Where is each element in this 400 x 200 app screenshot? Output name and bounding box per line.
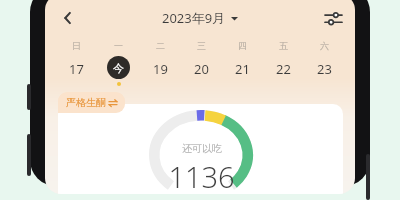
staticText: 2023年9月: [162, 9, 226, 27]
staticText: 还可以吃: [182, 142, 222, 155]
staticText: 六: [320, 40, 329, 51]
staticText: 二: [156, 40, 165, 51]
staticText: 今: [113, 61, 124, 75]
staticText: 21: [235, 60, 250, 78]
button[interactable]: 21: [222, 56, 263, 86]
staticText: 23: [317, 60, 332, 78]
button[interactable]: 19: [139, 56, 181, 86]
button[interactable]: 17: [55, 56, 97, 86]
button[interactable]: 2023年9月: [154, 6, 246, 30]
button[interactable]: 22: [263, 56, 304, 86]
button[interactable]: 23: [304, 56, 345, 86]
button[interactable]: 20: [181, 56, 222, 86]
staticText: 日: [72, 40, 81, 51]
button[interactable]: Settings: [317, 2, 349, 34]
button[interactable]: Back: [51, 1, 85, 35]
staticText: 五: [279, 40, 288, 51]
staticText: 19: [153, 60, 168, 78]
staticText: 一: [114, 40, 123, 51]
staticText: 20: [194, 60, 209, 78]
staticText: 严格生酮: [66, 96, 106, 109]
staticText: 22: [276, 60, 291, 78]
staticText: 17: [69, 60, 84, 78]
staticText: 三: [197, 40, 206, 51]
button[interactable]: 今: [97, 56, 139, 86]
staticText: 1136: [168, 157, 235, 194]
button[interactable]: 严格生酮: [58, 92, 125, 113]
staticText: 四: [238, 40, 247, 51]
